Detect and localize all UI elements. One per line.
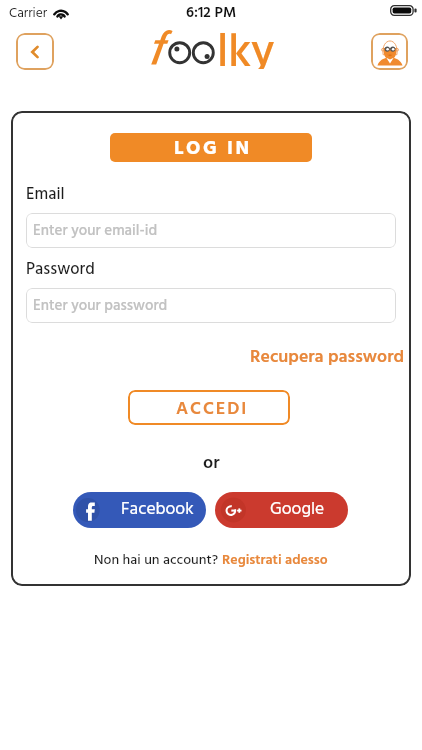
button[interactable]: Profile bbox=[371, 33, 408, 70]
staticText: Carrier bbox=[9, 3, 48, 25]
button[interactable]: LOG IN bbox=[110, 133, 312, 162]
button[interactable]: Back bbox=[16, 33, 54, 70]
staticText: 6:12 PM bbox=[186, 1, 237, 23]
staticText: Facebook bbox=[121, 496, 194, 524]
staticText: Password bbox=[26, 257, 95, 283]
staticText: Email bbox=[26, 182, 65, 208]
staticText: or bbox=[203, 449, 220, 478]
button[interactable]: Non hai un account? bbox=[11, 549, 411, 571]
staticText: ACCEDI bbox=[176, 395, 249, 424]
button[interactable]: Enter your password bbox=[26, 288, 396, 323]
staticText: Non hai un account? bbox=[94, 549, 222, 571]
button[interactable]: Google bbox=[215, 492, 348, 528]
staticText: Enter your email-id bbox=[33, 219, 158, 243]
button[interactable]: Recupera password bbox=[247, 341, 407, 373]
staticText: Registrati adesso bbox=[222, 549, 328, 571]
staticText: lky bbox=[217, 17, 275, 69]
staticText: LOG IN bbox=[174, 133, 252, 162]
button[interactable]: ACCEDI bbox=[128, 390, 290, 425]
staticText: Enter your password bbox=[33, 294, 168, 318]
button[interactable]: Facebook bbox=[73, 492, 206, 528]
staticText: Google bbox=[270, 496, 325, 524]
button[interactable]: Enter your email-id bbox=[26, 213, 396, 248]
staticText: Recupera password bbox=[250, 343, 404, 371]
